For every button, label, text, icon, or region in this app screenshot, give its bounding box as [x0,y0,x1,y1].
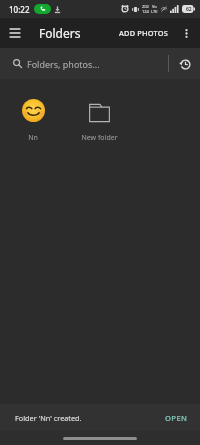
staticText: Folders, photos... [27,58,100,70]
staticText: OPEN [165,413,188,423]
staticText: LTE [151,9,158,14]
button[interactable]: Search history [178,57,192,71]
button[interactable]: OPEN [159,407,194,429]
staticText: Nn [28,133,38,143]
button[interactable]: ADD PHOTOS [114,21,174,45]
staticText: Folder 'Nn' created. [15,413,82,423]
staticText: Vo [152,4,157,9]
staticText: 124 [142,9,149,14]
staticText: 10:22 [9,4,30,15]
button[interactable]: Open navigation menu [0,18,30,48]
button[interactable]: Nn [0,79,66,143]
button[interactable]: New folder [66,79,132,143]
staticText: ADD PHOTOS [119,28,169,38]
button[interactable]: More options [174,21,198,45]
staticText: New folder [81,133,118,143]
staticText: Folders [39,25,81,41]
staticText: 62 [186,6,192,13]
staticText: 202 [142,4,149,9]
